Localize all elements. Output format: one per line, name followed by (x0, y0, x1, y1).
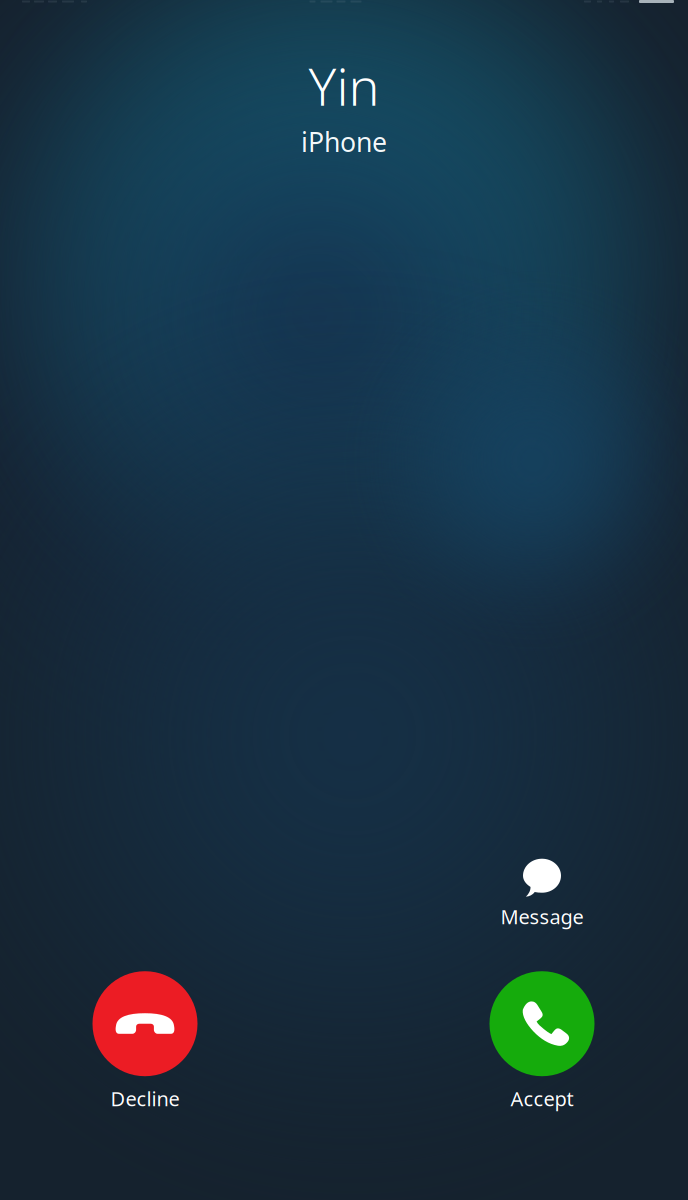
button[interactable]: Accept (447, 975, 637, 1108)
staticText: Decline (110, 1085, 179, 1112)
staticText: Yin (308, 51, 379, 120)
staticText: Accept (510, 1085, 573, 1112)
button[interactable]: Decline (50, 975, 240, 1108)
staticText: iPhone (301, 124, 387, 159)
button[interactable]: Message (447, 861, 637, 927)
staticText: Message (500, 903, 583, 930)
